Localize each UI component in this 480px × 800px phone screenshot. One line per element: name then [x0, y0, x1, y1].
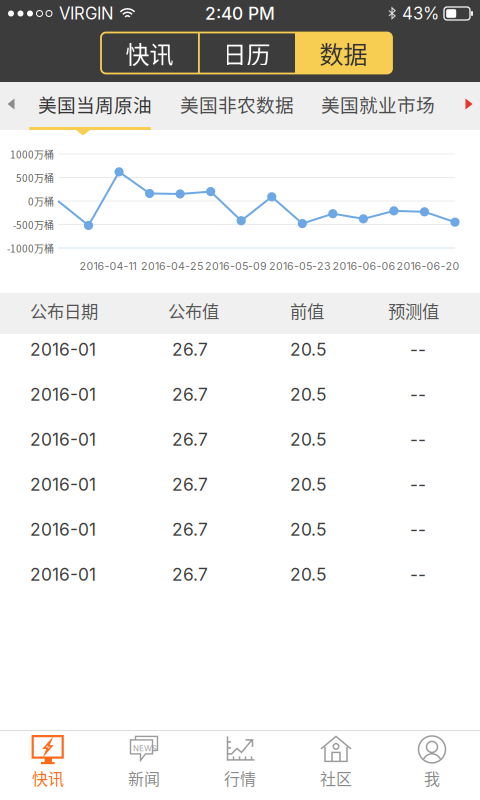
staticText: NEWS [133, 743, 157, 753]
staticText: 26.7 [172, 474, 208, 495]
staticText: 公布值 [168, 298, 219, 323]
staticText: -- [410, 564, 426, 585]
staticText: -- [410, 429, 426, 450]
staticText: 我 [424, 766, 440, 790]
staticText: 前值 [290, 298, 324, 323]
staticText: 26.7 [172, 384, 208, 405]
button[interactable]: 2016-01 [0, 424, 480, 469]
staticText: 2016-06-20 [396, 259, 459, 272]
button[interactable]: 2016-01 [0, 514, 480, 559]
staticText: VIRGIN [59, 3, 114, 24]
staticText: 20.5 [290, 429, 327, 450]
button[interactable]: 美国就业市场 [308, 82, 448, 126]
staticText: 2016-01 [30, 519, 96, 540]
staticText: -- [410, 474, 426, 495]
staticText: 美国当周原油 [38, 90, 152, 117]
staticText: 2016-01 [30, 384, 96, 405]
button[interactable]: 2016-01 [0, 334, 480, 379]
staticText: 公布日期 [30, 298, 98, 323]
button[interactable]: 快讯 [101, 32, 198, 73]
staticText: 2016-01 [30, 339, 96, 360]
button[interactable]: NEWS [96, 731, 192, 793]
button[interactable]: 我 [384, 731, 480, 793]
staticText: 26.7 [172, 429, 208, 450]
staticText: -- [410, 519, 426, 540]
staticText: 26.7 [172, 519, 208, 540]
staticText: 20.5 [290, 519, 327, 540]
staticText: 2016-01 [30, 474, 96, 495]
staticText: 社区 [320, 766, 352, 790]
button[interactable]: 上一个 [0, 82, 24, 126]
staticText: 26.7 [172, 564, 208, 585]
button[interactable]: 美国当周原油 [24, 82, 166, 126]
button[interactable]: 日历 [198, 32, 295, 73]
staticText: 数据 [319, 36, 367, 70]
staticText: 43% [402, 3, 439, 24]
button[interactable]: 2016-01 [0, 379, 480, 424]
staticText: 2016-05-09 [205, 259, 267, 272]
staticText: 2016-01 [30, 564, 96, 585]
staticText: 2016-05-23 [269, 259, 331, 272]
staticText: 0万桶 [28, 194, 54, 208]
staticText: 行情 [224, 766, 256, 790]
staticText: 快讯 [32, 766, 64, 790]
button[interactable]: 社区 [288, 731, 384, 793]
staticText: 预测值 [388, 298, 439, 323]
button[interactable]: 美国非农数据 [166, 82, 308, 126]
button[interactable]: 数据 [295, 32, 392, 73]
button[interactable]: 行情 [192, 731, 288, 793]
staticText: 20.5 [290, 339, 327, 360]
staticText: -- [410, 339, 426, 360]
staticText: 2:40 PM [205, 3, 275, 24]
staticText: -500万桶 [13, 217, 54, 232]
button[interactable]: 2016-01 [0, 469, 480, 514]
staticText: -- [410, 384, 426, 405]
button[interactable]: 下一个 [456, 82, 480, 126]
staticText: 2016-01 [30, 429, 96, 450]
staticText: 新闻 [128, 766, 160, 790]
staticText: 500万桶 [16, 170, 54, 185]
staticText: 20.5 [290, 564, 327, 585]
staticText: 日历 [222, 36, 270, 70]
staticText: 美国非农数据 [180, 90, 294, 117]
button[interactable]: 快讯 [0, 731, 96, 793]
staticText: 20.5 [290, 474, 327, 495]
staticText: 快讯 [125, 36, 173, 70]
button[interactable]: 2016-01 [0, 559, 480, 604]
staticText: -1000万桶 [7, 241, 54, 255]
staticText: 26.7 [172, 339, 208, 360]
staticText: 美国就业市场 [321, 90, 435, 117]
staticText: 2016-06-06 [332, 259, 395, 272]
staticText: 2016-04-11 [79, 259, 136, 272]
staticText: 2016-04-25 [141, 259, 203, 272]
staticText: 1000万桶 [10, 147, 54, 161]
staticText: 20.5 [290, 384, 327, 405]
